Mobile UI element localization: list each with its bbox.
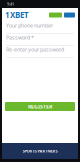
button[interactable] — [64, 12, 75, 17]
staticText: Password * — [6, 34, 34, 41]
staticText: Re-enter your password — [6, 46, 64, 53]
button[interactable] — [49, 12, 62, 17]
staticText: REGISTER — [28, 103, 52, 110]
staticText: Your phone number — [6, 22, 53, 29]
staticText: 9:41 — [7, 1, 14, 7]
staticText: 1XBET — [5, 10, 29, 20]
staticText: SPORTS PARTNERS — [22, 148, 57, 154]
button[interactable]: REGISTER — [5, 102, 75, 111]
